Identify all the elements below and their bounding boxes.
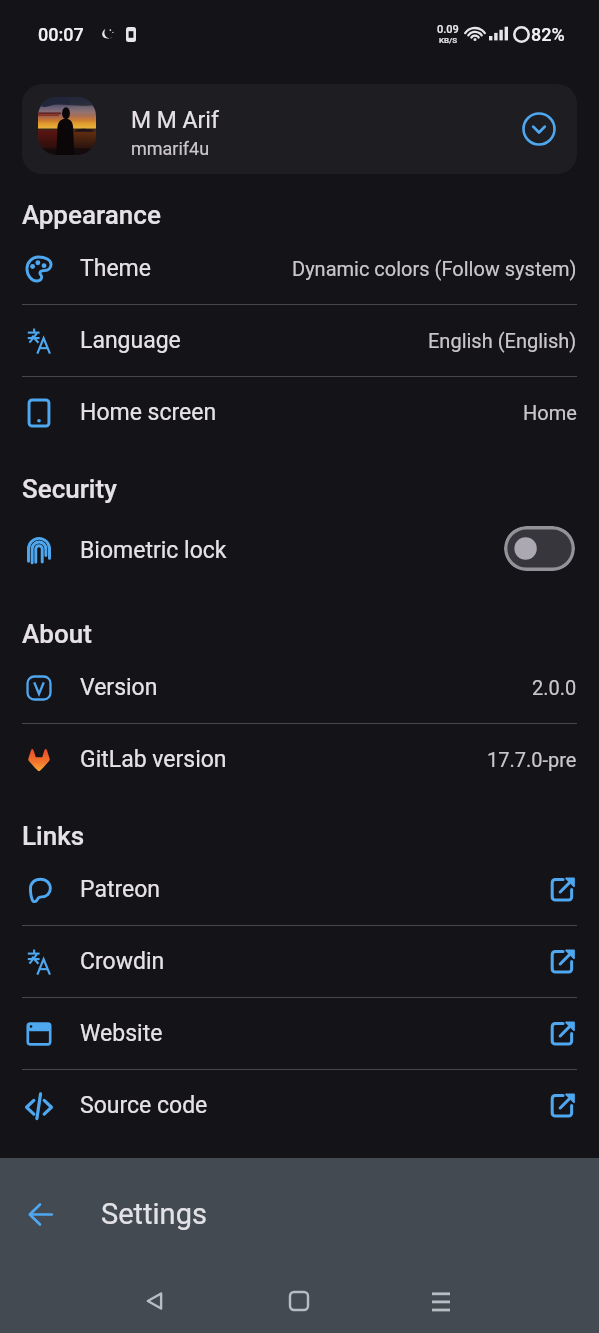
staticText: Language [80, 327, 181, 354]
staticText: Dynamic colors (Follow system) [292, 257, 577, 280]
staticText: Appearance [22, 200, 161, 230]
button[interactable]: Patreon [0, 854, 599, 925]
staticText: English (English) [428, 329, 577, 352]
button[interactable]: GitLab version [0, 724, 599, 795]
button[interactable]: Language [0, 305, 599, 376]
button[interactable]: Home screen [0, 377, 599, 448]
staticText: 2.0.0 [532, 676, 577, 699]
staticText: Crowdin [80, 948, 165, 975]
staticText: 0.09 [437, 23, 459, 36]
staticText: Home screen [80, 399, 217, 426]
staticText: Settings [101, 1197, 207, 1231]
button[interactable]: Biometric lock [0, 507, 599, 593]
staticText: M M Arif [131, 107, 219, 134]
staticText: Links [22, 821, 85, 851]
button[interactable]: Source code [0, 1070, 599, 1141]
staticText: Website [80, 1020, 163, 1047]
staticText: Version [80, 674, 158, 701]
staticText: 82% [531, 24, 565, 45]
button[interactable]: Recent apps [417, 1277, 465, 1325]
button[interactable]: Back [131, 1277, 179, 1325]
staticText: 00:07 [38, 24, 84, 45]
button[interactable]: Home [275, 1277, 323, 1325]
button[interactable]: M M Arif [22, 84, 577, 174]
button[interactable]: Website [0, 998, 599, 1069]
staticText: Theme [80, 255, 151, 282]
staticText: KB/S [439, 36, 458, 45]
button[interactable]: Back [18, 1192, 62, 1236]
staticText: About [22, 619, 92, 649]
staticText: Biometric lock [80, 537, 227, 564]
staticText: Patreon [80, 876, 161, 903]
staticText: mmarif4u [131, 138, 210, 159]
button[interactable]: Biometric lock toggle [504, 526, 575, 571]
button[interactable]: Crowdin [0, 926, 599, 997]
staticText: 17.7.0-pre [487, 748, 577, 771]
staticText: GitLab version [80, 746, 227, 773]
staticText: Home [523, 401, 577, 424]
staticText: Source code [80, 1092, 208, 1119]
staticText: Security [22, 474, 117, 504]
button[interactable]: Theme [0, 233, 599, 304]
button[interactable]: Version [0, 652, 599, 723]
button[interactable]: Expand account [519, 109, 559, 149]
